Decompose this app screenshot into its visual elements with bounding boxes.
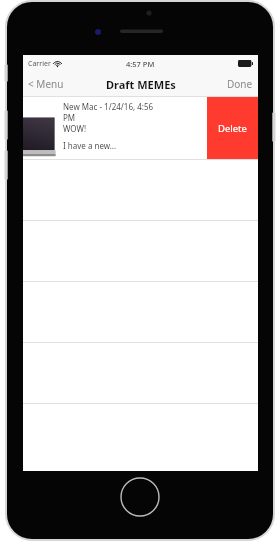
staticText: Done xyxy=(227,77,253,91)
button[interactable]: Delete xyxy=(207,97,258,159)
staticText: New Mac - 1/24/16, 4:56 xyxy=(63,101,154,112)
button[interactable]: New Mac - 1/24/16, 4:56 xyxy=(23,97,258,159)
staticText: WOW! xyxy=(63,123,87,134)
staticText: Delete xyxy=(218,122,247,135)
staticText: Carrier xyxy=(28,59,51,69)
staticText: < Menu xyxy=(28,77,64,91)
button[interactable]: Done xyxy=(222,74,258,94)
staticText: 4:57 PM xyxy=(126,59,155,69)
staticText: Draft MEMEs xyxy=(106,77,176,92)
staticText: PM xyxy=(63,112,76,123)
button[interactable]: < Menu xyxy=(23,74,69,94)
staticText: I have a new... xyxy=(63,140,117,151)
